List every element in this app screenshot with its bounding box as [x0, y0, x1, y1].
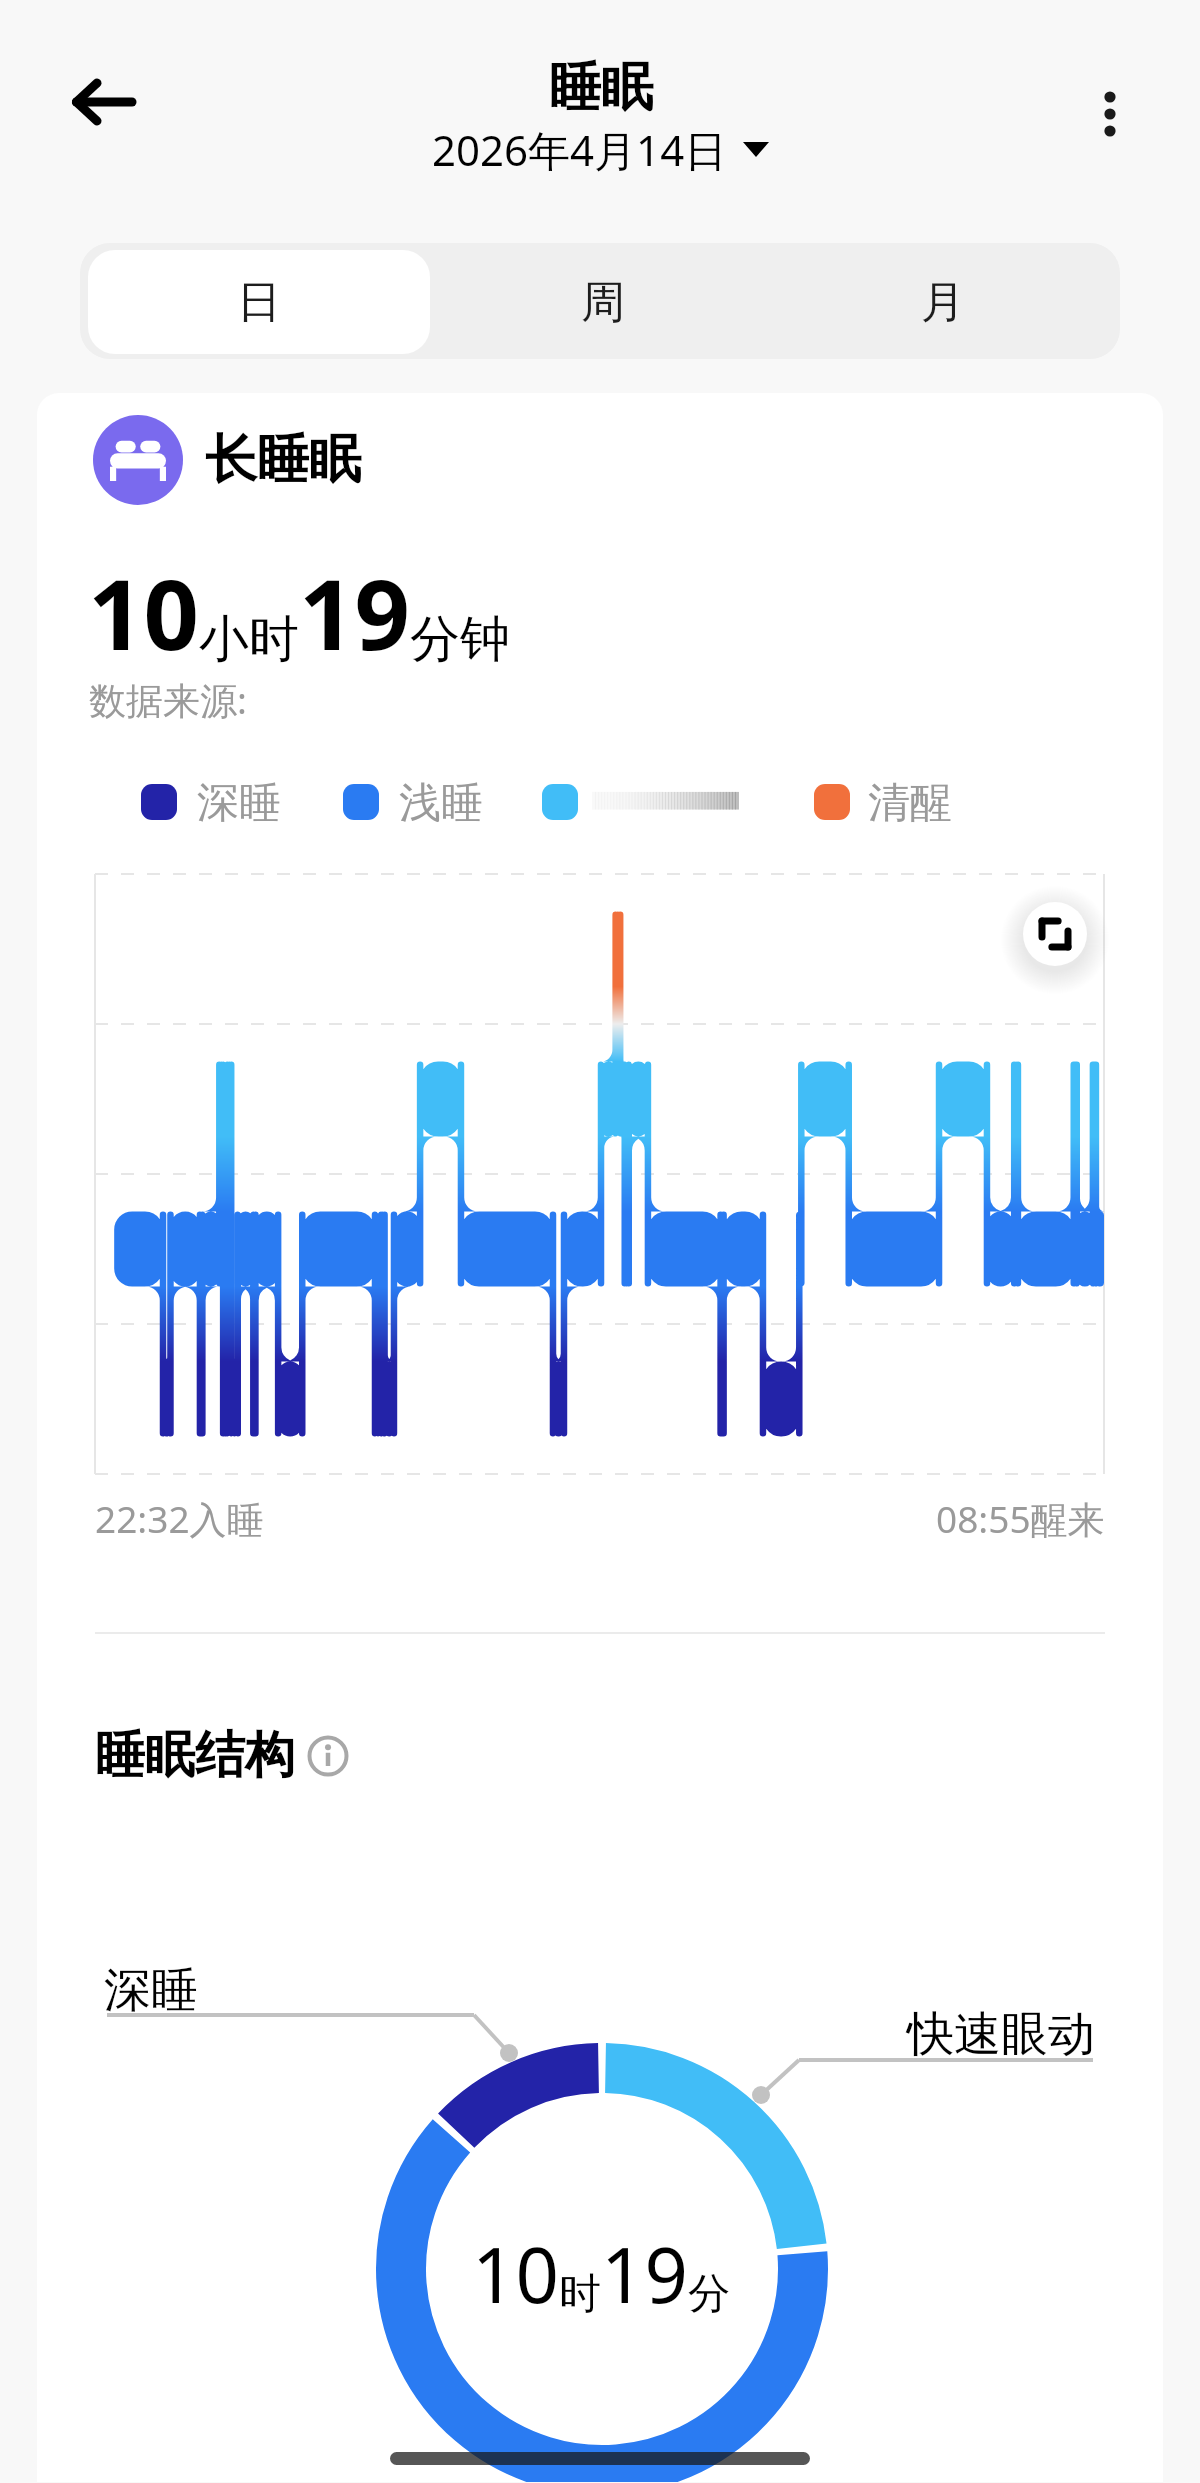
staticText: 08:55醒来 — [936, 1493, 1105, 1544]
staticText: 周 — [581, 275, 625, 330]
button[interactable]: Expand chart — [1023, 902, 1087, 966]
button[interactable]: 深睡 — [135, 779, 301, 825]
button[interactable]: 月 — [770, 250, 1115, 354]
staticText: 月 — [921, 275, 965, 330]
button[interactable]: 浅睡 — [337, 779, 503, 825]
staticText: 深睡 — [104, 1961, 198, 2020]
staticText: 长睡眠 — [205, 427, 361, 493]
staticText: 10 — [88, 546, 199, 678]
button[interactable]: 清醒 — [808, 779, 972, 825]
button[interactable]: 长睡眠 — [93, 415, 361, 505]
staticText: 时 — [559, 2268, 601, 2321]
staticText: 日 — [237, 275, 281, 330]
staticText: 19 — [299, 546, 410, 678]
button[interactable]: 日 — [88, 250, 430, 354]
staticText: 睡眠结构 — [95, 1724, 295, 1787]
button[interactable]: 周 — [430, 250, 775, 354]
staticText: 数据来源: — [89, 674, 247, 725]
button[interactable]: More options — [1060, 60, 1160, 160]
staticText: 22:32入睡 — [95, 1493, 264, 1544]
staticText: 快速眼动 — [907, 2005, 1095, 2064]
staticText: 10 — [472, 2222, 559, 2326]
staticText: 清醒 — [868, 777, 952, 823]
staticText: 深睡 — [197, 777, 281, 823]
button[interactable]: 睡眠结构 — [95, 1724, 349, 1787]
staticText: 分钟 — [410, 608, 510, 671]
staticText: 小时 — [199, 608, 299, 671]
staticText: 睡眠 — [549, 55, 653, 121]
staticText: 分 — [688, 2268, 730, 2321]
staticText: 浅睡 — [399, 777, 483, 823]
staticText: 19 — [601, 2222, 688, 2326]
staticText: 2026年4月14日 — [432, 121, 727, 178]
button[interactable]: Back — [48, 46, 160, 158]
